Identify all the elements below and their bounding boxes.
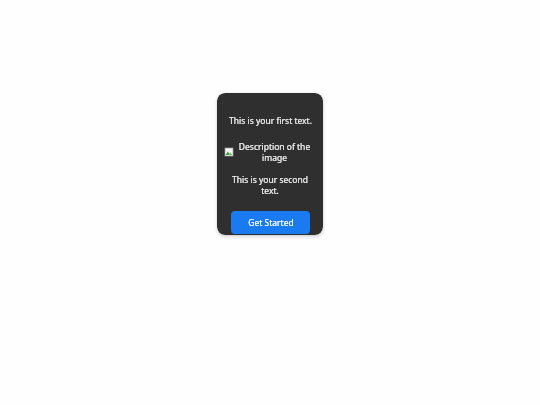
staticText: This is your second text. xyxy=(225,174,315,196)
other: Description of the image xyxy=(225,148,233,156)
staticText: Get Started xyxy=(248,217,294,229)
button[interactable]: Get Started xyxy=(231,211,310,234)
staticText: This is your first text. xyxy=(229,115,312,127)
staticText: Description of the image xyxy=(234,141,315,163)
